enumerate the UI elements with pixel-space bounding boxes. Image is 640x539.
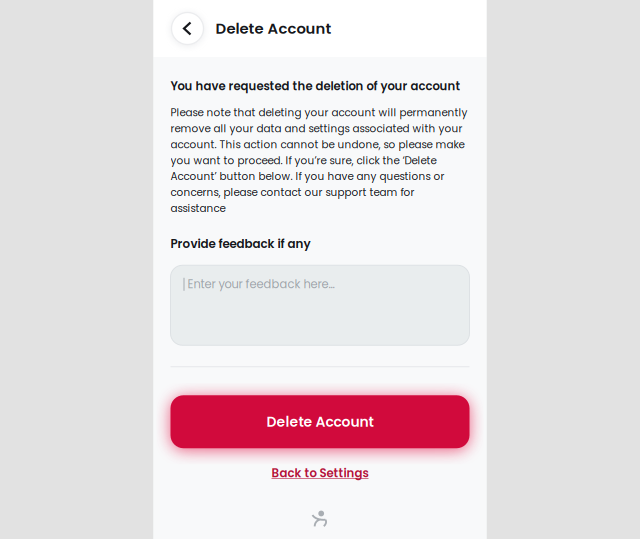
staticText: Back to Settings	[271, 465, 368, 481]
staticText: Provide feedback if any	[170, 236, 310, 252]
staticText: Enter your feedback here...	[187, 276, 334, 292]
staticText: Please note that deleting your account w…	[170, 105, 467, 216]
button[interactable]: Back	[170, 11, 204, 45]
staticText: Delete Account	[266, 412, 373, 431]
staticText: You have requested the deletion of your …	[170, 78, 460, 94]
staticText: Delete Account	[215, 18, 331, 39]
button[interactable]: Back to Settings	[170, 462, 469, 484]
button[interactable]: Delete Account	[170, 395, 469, 448]
